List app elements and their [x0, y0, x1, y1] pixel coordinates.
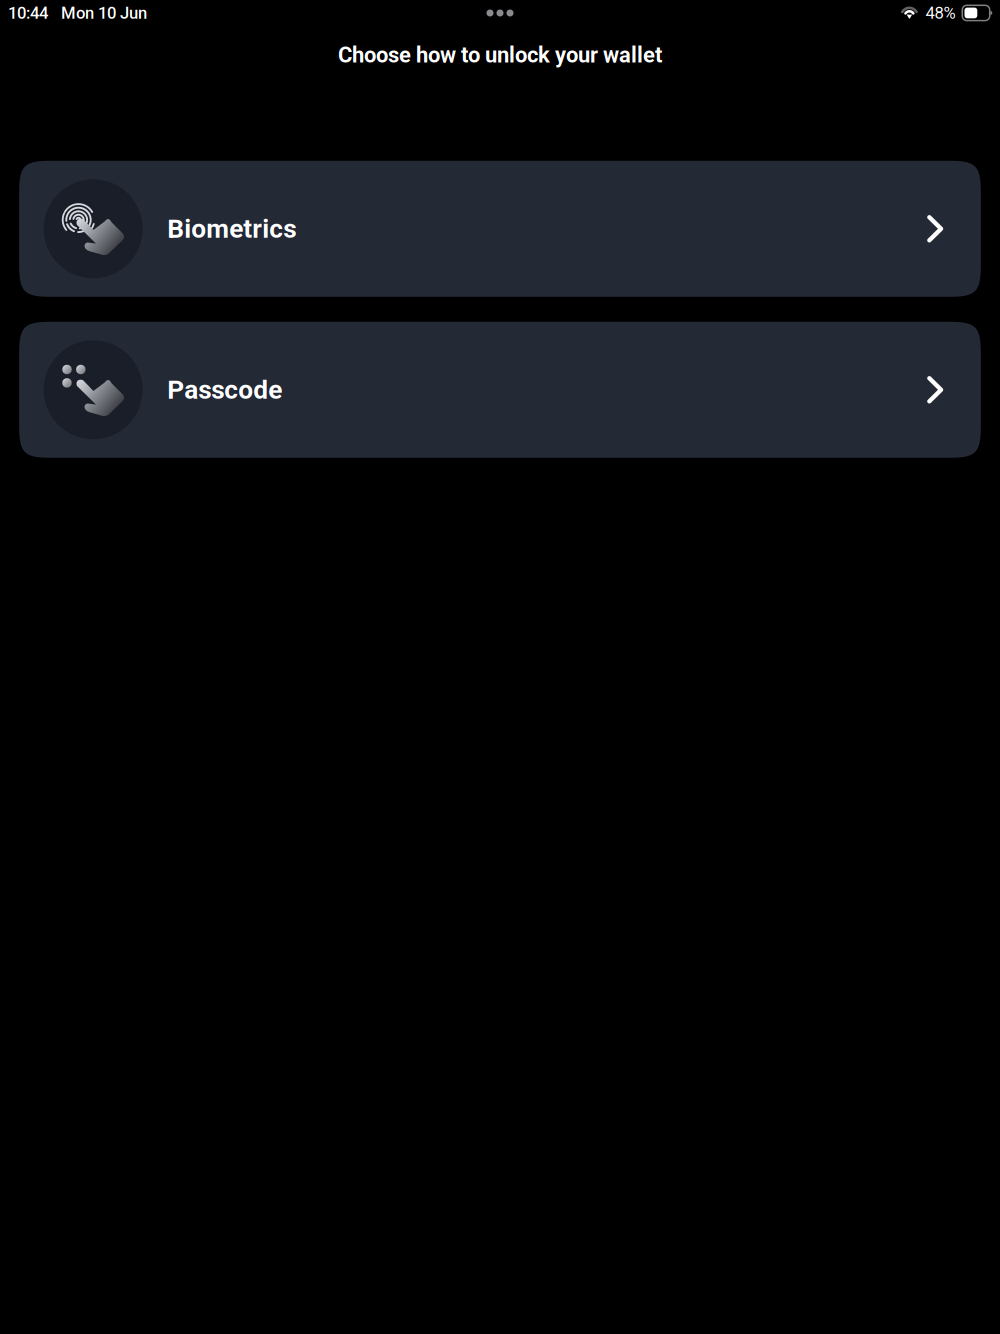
staticText: 48% — [925, 3, 955, 23]
staticText: Biometrics — [167, 213, 296, 244]
staticText: Mon 10 Jun — [61, 3, 147, 23]
button[interactable]: Biometrics — [19, 161, 981, 297]
staticText: 10:44 — [8, 3, 48, 23]
staticText: Choose how to unlock your wallet — [338, 42, 662, 68]
button[interactable]: Passcode — [19, 322, 981, 458]
staticText: Passcode — [167, 374, 282, 405]
